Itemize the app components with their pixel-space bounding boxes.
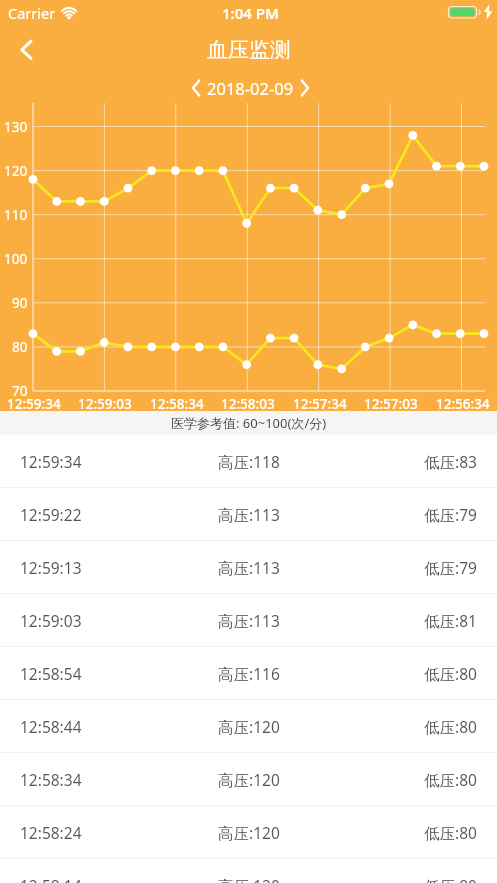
button[interactable]: 12:58:44	[0, 700, 497, 753]
staticText: 高压:120	[218, 769, 280, 790]
staticText: 120	[4, 162, 28, 180]
staticText: 12:56:34	[436, 395, 490, 413]
button[interactable]	[8, 34, 44, 64]
staticText: 1:04 PM	[222, 3, 279, 23]
staticText: 低压:79	[424, 557, 477, 578]
staticText: 高压:113	[218, 504, 280, 525]
staticText: 低压:83	[424, 451, 477, 472]
staticText: 12:58:24	[20, 822, 82, 843]
staticText: 高压:120	[218, 875, 280, 883]
staticText: 12:57:34	[293, 395, 347, 413]
staticText: 高压:113	[218, 557, 280, 578]
staticText: 110	[4, 206, 28, 224]
staticText: 高压:118	[218, 451, 280, 472]
staticText: 12:58:44	[20, 716, 82, 737]
staticText: 12:59:03	[78, 395, 132, 413]
staticText: 医学参考值: 60~100(次/分)	[171, 414, 327, 432]
staticText: 12:58:34	[150, 395, 204, 413]
button[interactable]: 12:58:14	[0, 859, 497, 883]
staticText: 低压:81	[424, 610, 477, 631]
staticText: 100	[4, 250, 28, 268]
staticText: 12:59:34	[20, 451, 82, 472]
button[interactable]: 12:59:03	[0, 594, 497, 647]
button[interactable]: 12:58:24	[0, 806, 497, 859]
staticText: 低压:80	[424, 875, 477, 883]
button[interactable]: 12:58:34	[0, 753, 497, 806]
staticText: 12:59:34	[7, 395, 61, 413]
staticText: 高压:113	[218, 610, 280, 631]
staticText: 12:59:13	[20, 557, 82, 578]
staticText: Carrier	[8, 3, 56, 23]
staticText: 12:58:03	[221, 395, 275, 413]
staticText: 80	[12, 338, 28, 356]
staticText: 高压:116	[218, 663, 280, 684]
button[interactable]: 12:59:22	[0, 488, 497, 541]
button[interactable]: 12:58:54	[0, 647, 497, 700]
button[interactable]: 2018-02-09	[180, 74, 320, 102]
staticText: 12:58:54	[20, 663, 82, 684]
staticText: 90	[12, 294, 28, 312]
staticText: 12:57:03	[364, 395, 418, 413]
staticText: 血压监测	[207, 37, 291, 59]
staticText: 低压:80	[424, 822, 477, 843]
staticText: 低压:79	[424, 504, 477, 525]
staticText: 低压:80	[424, 663, 477, 684]
staticText: 70	[12, 382, 28, 400]
staticText: 12:59:03	[20, 610, 82, 631]
staticText: 130	[4, 118, 28, 136]
staticText: 高压:120	[218, 822, 280, 843]
staticText: 12:58:34	[20, 769, 82, 790]
staticText: 2018-02-09	[207, 77, 294, 99]
staticText: 高压:120	[218, 716, 280, 737]
button[interactable]: 12:59:34	[0, 435, 497, 488]
button[interactable]: 12:59:13	[0, 541, 497, 594]
staticText: 12:58:14	[20, 875, 82, 883]
staticText: 12:59:22	[20, 504, 82, 525]
staticText: 低压:80	[424, 769, 477, 790]
staticText: 低压:80	[424, 716, 477, 737]
